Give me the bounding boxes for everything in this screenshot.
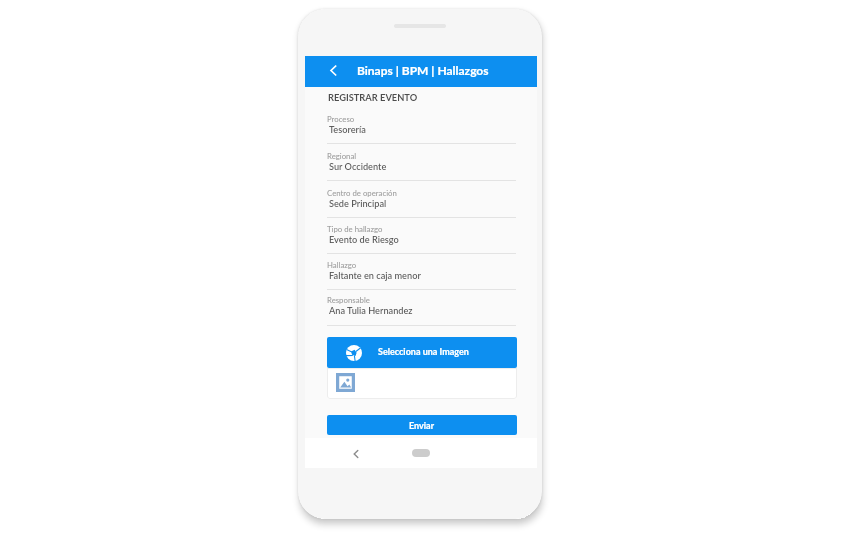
button[interactable]: Back — [337, 438, 373, 468]
staticText: Regional — [327, 151, 357, 160]
staticText: Selecciona una Imagen — [378, 346, 469, 357]
staticText: Faltante en caja menor — [329, 270, 421, 281]
staticText: Hallazgo — [327, 260, 357, 269]
staticText: Centro de operación — [327, 188, 397, 197]
staticText: Evento de Riesgo — [329, 234, 399, 245]
staticText: Enviar — [409, 420, 435, 431]
staticText: Sur Occidente — [329, 161, 387, 172]
staticText: REGISTRAR EVENTO — [328, 92, 418, 103]
staticText: Responsable — [327, 295, 370, 304]
button[interactable]: Home — [404, 438, 438, 468]
button[interactable]: Enviar — [327, 415, 517, 435]
staticText: Tesorería — [329, 124, 366, 135]
staticText: Sede Principal — [329, 198, 387, 209]
staticText: Proceso — [327, 114, 355, 123]
button[interactable]: Selecciona una Imagen — [327, 337, 517, 368]
staticText: Ana Tulia Hernandez — [329, 305, 413, 316]
button[interactable]: Selected image — [336, 373, 355, 392]
button[interactable]: Back — [305, 56, 356, 87]
staticText: Binaps | BPM | Hallazgos — [357, 63, 489, 77]
staticText: Tipo de hallazgo — [327, 224, 383, 233]
